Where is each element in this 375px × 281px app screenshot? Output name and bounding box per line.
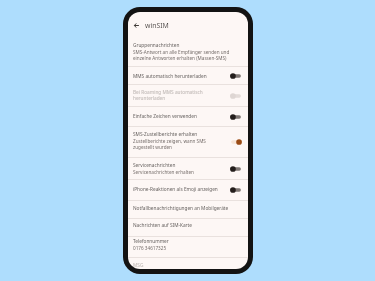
staticText: Notfallbenachrichtigungen an Mobilgeräte (133, 205, 229, 211)
button[interactable]: MSG (128, 258, 248, 269)
button[interactable]: Umschalten (230, 67, 242, 84)
staticText: Telefonnummer (133, 238, 169, 244)
staticText: Nachrichten auf SIM-Karte (133, 222, 192, 228)
button[interactable]: Umschalten (230, 180, 242, 200)
staticText: Gruppennachrichten (133, 42, 180, 48)
staticText: 0176 34617325 (133, 245, 167, 251)
staticText: SMS-Antwort an alle Empfänger senden und… (133, 49, 242, 61)
staticText: SMS-Zustellberichte erhalten (133, 131, 198, 137)
button[interactable]: Bei Roaming MMS automatisch herunterlade… (128, 85, 248, 106)
staticText: MSG (133, 262, 144, 268)
button[interactable]: iPhone-Reaktionen als Emoji anzeigen (128, 180, 248, 200)
staticText: iPhone-Reaktionen als Emoji anzeigen (133, 186, 218, 192)
staticText: Bei Roaming MMS automatisch herunterlade… (133, 89, 227, 101)
button[interactable]: MMS automatisch herunterladen (128, 67, 248, 84)
button[interactable]: Notfallbenachrichtigungen an Mobilgeräte (128, 201, 248, 218)
button[interactable]: Nachrichten auf SIM-Karte (128, 219, 248, 236)
button[interactable]: Umschalten (230, 107, 242, 126)
staticText: Einfache Zeichen verwenden (133, 113, 197, 119)
staticText: Servicenachrichten (133, 162, 176, 168)
button[interactable]: Umschalten (230, 127, 242, 157)
button[interactable]: Gruppennachrichten (128, 38, 248, 66)
button[interactable]: SMS-Zustellberichte erhalten (128, 127, 248, 157)
staticText: winSIM (145, 21, 169, 30)
button[interactable]: Einfache Zeichen verwenden (128, 107, 248, 126)
button[interactable]: Umschalten (230, 85, 242, 106)
staticText: MMS automatisch herunterladen (133, 73, 207, 79)
button[interactable]: Umschalten (230, 158, 242, 179)
button[interactable]: Servicenachrichten (128, 158, 248, 179)
button[interactable]: Zurück (131, 20, 142, 31)
staticText: Zustellberichte zeigen, wann SMS zugeste… (133, 138, 227, 150)
button[interactable]: Telefonnummer (128, 237, 248, 257)
staticText: Servicenachrichten erhalten (133, 169, 194, 175)
